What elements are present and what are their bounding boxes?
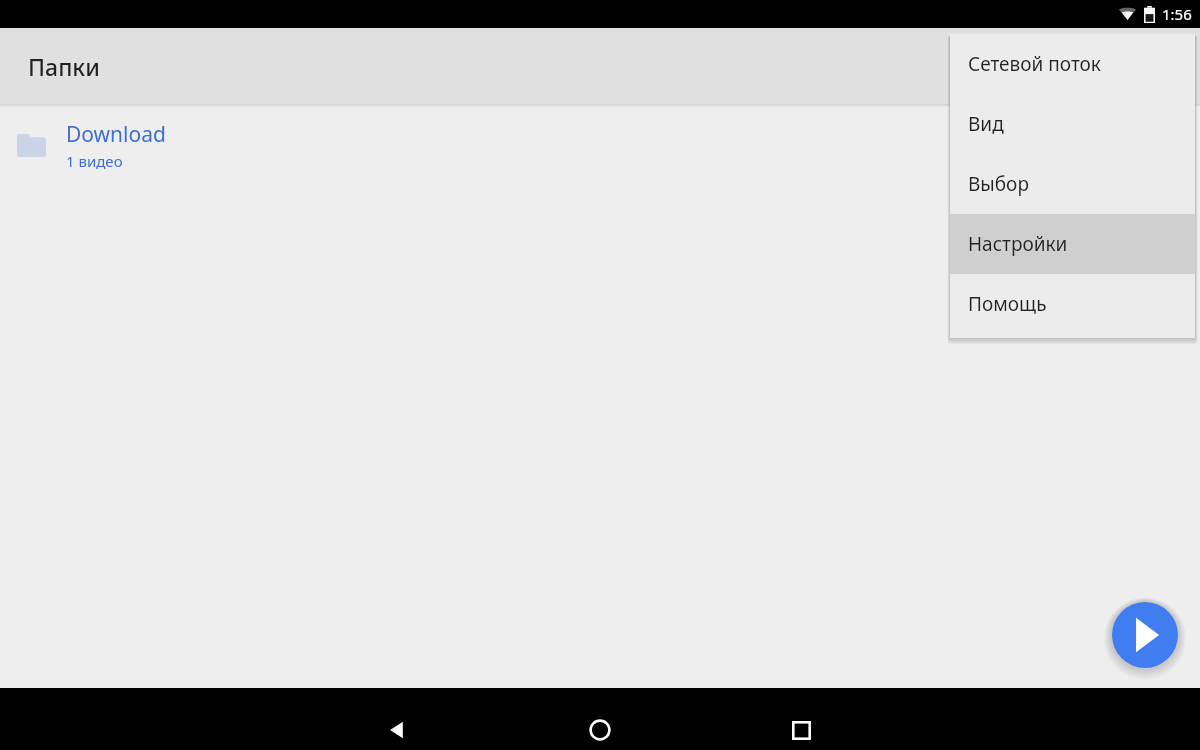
- staticText: Помощь: [968, 291, 1047, 317]
- staticText: Выбор: [968, 171, 1029, 197]
- staticText: Download: [66, 120, 166, 149]
- staticText: Вид: [968, 111, 1004, 137]
- button[interactable]: Сетевой поток: [950, 34, 1195, 94]
- button[interactable]: Выбор: [950, 154, 1195, 214]
- button[interactable]: Настройки: [950, 214, 1195, 274]
- button[interactable]: Recent apps: [773, 702, 829, 750]
- staticText: Настройки: [968, 231, 1068, 257]
- staticText: 1:56: [1162, 4, 1192, 24]
- button[interactable]: Play: [1108, 598, 1182, 672]
- button[interactable]: Вид: [950, 94, 1195, 154]
- staticText: Папки: [28, 51, 100, 82]
- button[interactable]: Помощь: [950, 274, 1195, 334]
- staticText: Сетевой поток: [968, 51, 1101, 77]
- button[interactable]: Back: [370, 702, 426, 750]
- button[interactable]: Download: [0, 107, 1200, 183]
- button[interactable]: Home: [572, 702, 628, 750]
- staticText: 1 видео: [66, 151, 123, 171]
